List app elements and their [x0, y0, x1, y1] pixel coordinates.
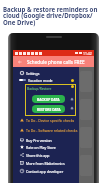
button[interactable]: Share this app	[13, 151, 79, 159]
staticText: RESTORE DATA	[37, 107, 61, 111]
staticText: More from Maketronics	[26, 161, 65, 166]
button[interactable]: Vacation mode	[13, 76, 79, 84]
button[interactable]: Buy Pro version	[13, 136, 79, 144]
button[interactable]: Rate on Play Store	[13, 143, 79, 151]
button[interactable]: To Do - Software related checks	[13, 126, 79, 134]
staticText: To Do - Software related checks	[26, 128, 78, 133]
staticText: Backup/Restore	[27, 86, 52, 90]
button[interactable]: BACKUP DATA	[32, 95, 65, 103]
staticText: To Do - Device specific checks	[26, 118, 75, 123]
staticText: Contact app developer	[26, 169, 64, 174]
staticText: Vacation mode	[28, 78, 53, 83]
staticText: BACKUP DATA	[37, 97, 60, 101]
staticText: Schedule phone calls FREE	[27, 59, 85, 65]
button[interactable]: RESTORE DATA	[32, 105, 65, 113]
button[interactable]: To Do - Device specific checks	[13, 116, 79, 124]
staticText: 11:42	[83, 51, 92, 56]
button[interactable]: Back	[17, 59, 23, 65]
button[interactable]: Contact app developer	[13, 167, 79, 175]
staticText: Settings	[26, 71, 40, 76]
staticText: Rate on Play Store	[26, 145, 56, 150]
staticText: Buy Pro version	[26, 138, 52, 143]
button[interactable]: More from Maketronics	[13, 159, 79, 167]
button[interactable]: Settings	[13, 69, 79, 77]
staticText: Share this app	[26, 153, 50, 158]
staticText: Backup & restore reminders on cloud (Goo…	[3, 5, 98, 27]
